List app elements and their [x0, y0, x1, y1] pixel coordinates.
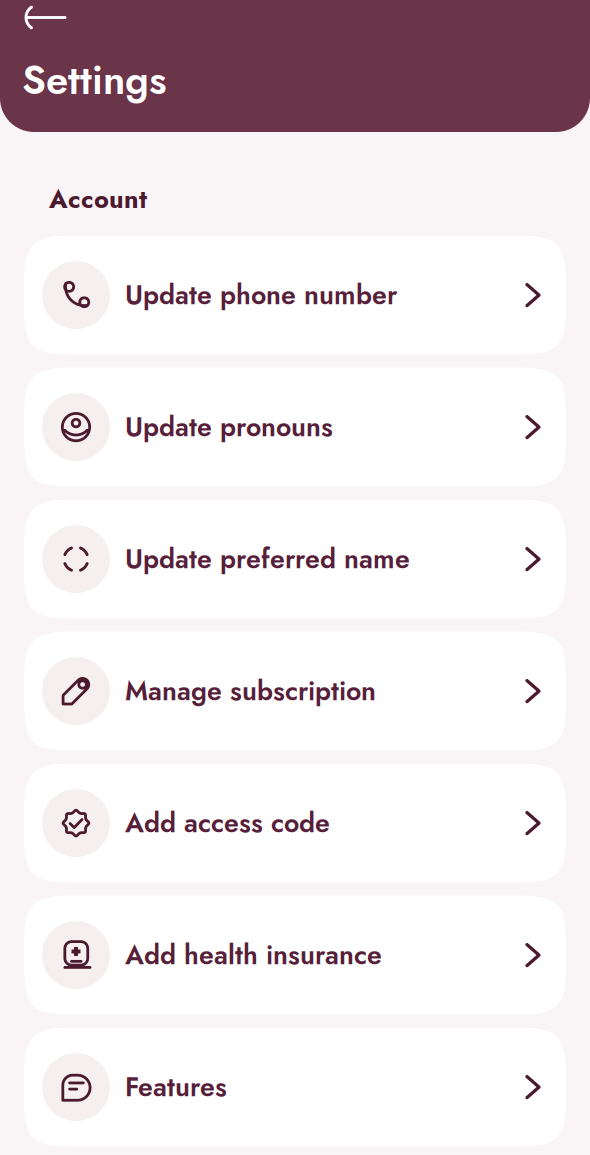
- staticText: Add health insurance: [125, 936, 382, 974]
- button[interactable]: Update preferred name: [24, 500, 566, 619]
- staticText: Update preferred name: [125, 540, 410, 578]
- button[interactable]: Add health insurance: [24, 896, 566, 1015]
- staticText: Update pronouns: [125, 408, 333, 446]
- staticText: Settings: [22, 51, 167, 109]
- button[interactable]: Update phone number: [24, 236, 566, 355]
- button[interactable]: Add access code: [24, 764, 566, 883]
- button[interactable]: Manage subscription: [24, 632, 566, 751]
- staticText: Account: [49, 181, 147, 218]
- staticText: Update phone number: [125, 276, 397, 314]
- staticText: Features: [125, 1068, 227, 1106]
- button[interactable]: Back: [0, 0, 75, 36]
- button[interactable]: Update pronouns: [24, 368, 566, 487]
- staticText: Add access code: [125, 804, 330, 842]
- button[interactable]: Features: [24, 1028, 566, 1147]
- staticText: Manage subscription: [125, 672, 376, 710]
